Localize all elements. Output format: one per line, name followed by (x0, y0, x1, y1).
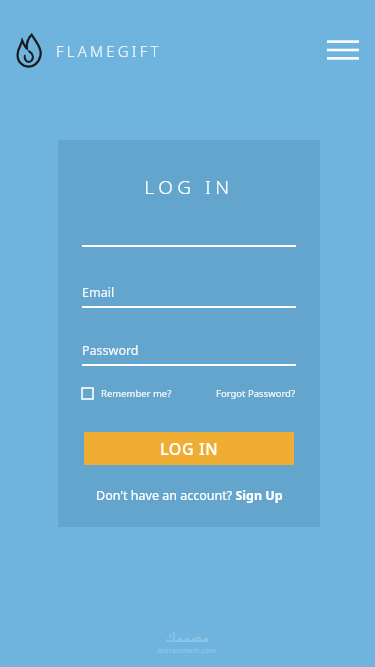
button[interactable]: Password (82, 342, 296, 366)
button[interactable]: Remember me? (82, 387, 172, 400)
staticText: Email (82, 284, 115, 301)
staticText: Don't have an account? Sign Up (96, 487, 283, 504)
button[interactable]: LOG IN (84, 432, 294, 465)
staticText: LOG IN (160, 438, 219, 460)
staticText: LOG IN (58, 174, 320, 200)
staticText: FLAMEGIFT (56, 41, 162, 61)
staticText: Password (82, 342, 139, 359)
button[interactable]: Menu (327, 36, 359, 64)
button[interactable]: Forgot Password? (216, 387, 296, 400)
staticText: Remember me? (101, 387, 172, 400)
button[interactable]: Don't have an account? Sign Up (58, 487, 320, 504)
other: FlameGift logo (16, 34, 42, 67)
button[interactable] (82, 229, 296, 247)
button[interactable]: FlameGift logo (16, 34, 162, 67)
staticText: مصممك (165, 630, 210, 645)
staticText: mosammem.com (158, 646, 217, 655)
button[interactable]: Email (82, 284, 296, 308)
